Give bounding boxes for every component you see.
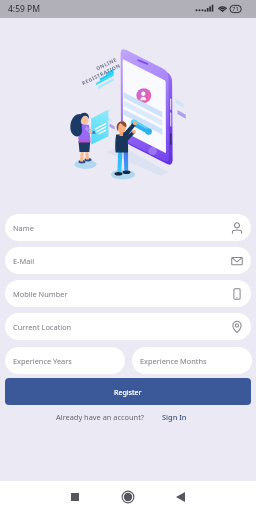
staticText: 71 bbox=[232, 5, 239, 13]
button[interactable]: Sign In bbox=[162, 412, 187, 422]
button[interactable]: Current Location bbox=[5, 313, 251, 340]
staticText: Already have an account? bbox=[56, 412, 145, 422]
staticText: Mobile Number bbox=[13, 289, 68, 299]
button[interactable]: Mobile Number bbox=[5, 280, 251, 307]
button[interactable]: Home bbox=[115, 484, 141, 510]
staticText: Experience Months bbox=[140, 356, 207, 366]
button[interactable]: Experience Months bbox=[132, 347, 252, 374]
button[interactable]: Name bbox=[5, 214, 251, 241]
staticText: Sign In bbox=[162, 412, 187, 422]
staticText: REGISTRATION bbox=[81, 62, 122, 87]
button[interactable]: Back bbox=[167, 484, 193, 510]
button[interactable]: Experience Years bbox=[5, 347, 125, 374]
staticText: 4:59 PM bbox=[8, 3, 41, 15]
button[interactable]: Recent apps bbox=[62, 484, 88, 510]
staticText: Current Location bbox=[13, 322, 72, 332]
staticText: Name bbox=[13, 223, 34, 233]
staticText: E-Mail bbox=[13, 256, 35, 266]
button[interactable]: E-Mail bbox=[5, 247, 251, 274]
button[interactable]: Register bbox=[5, 378, 251, 405]
staticText: Experience Years bbox=[13, 356, 72, 366]
staticText: Register bbox=[114, 387, 142, 397]
staticText: ONLINE bbox=[95, 56, 119, 72]
